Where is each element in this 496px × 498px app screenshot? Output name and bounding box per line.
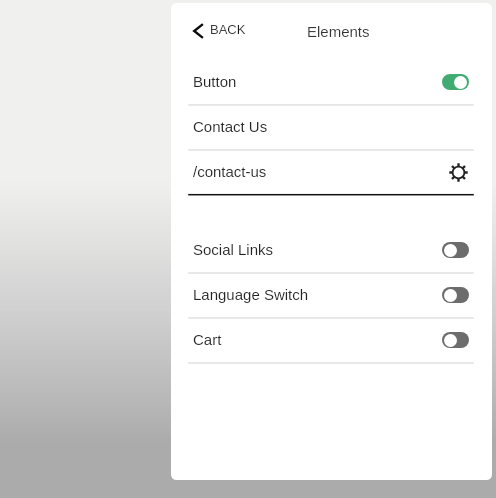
staticText: Social Links	[193, 241, 274, 258]
button[interactable]: /contact-us	[171, 149, 492, 194]
button[interactable]: Social Links	[171, 227, 492, 272]
staticText: Language Switch	[193, 286, 309, 303]
staticText: Elements	[307, 23, 370, 40]
staticText: Button	[193, 73, 237, 90]
button[interactable]: Switch on	[442, 74, 469, 90]
button[interactable]: Switch off	[442, 242, 469, 258]
staticText: Contact Us	[193, 118, 268, 135]
staticText: BACK	[210, 22, 246, 37]
staticText: Cart	[193, 331, 222, 348]
staticText: /contact-us	[193, 163, 267, 180]
button[interactable]: Switch off	[442, 287, 469, 303]
button[interactable]: Language Switch	[171, 272, 492, 317]
button[interactable]: Button	[171, 59, 492, 104]
button[interactable]: Switch off	[442, 332, 469, 348]
button[interactable]: Settings	[447, 161, 469, 183]
button[interactable]: Cart	[171, 317, 492, 362]
button[interactable]: Contact Us	[171, 104, 492, 149]
button[interactable]: BACK	[189, 23, 252, 39]
